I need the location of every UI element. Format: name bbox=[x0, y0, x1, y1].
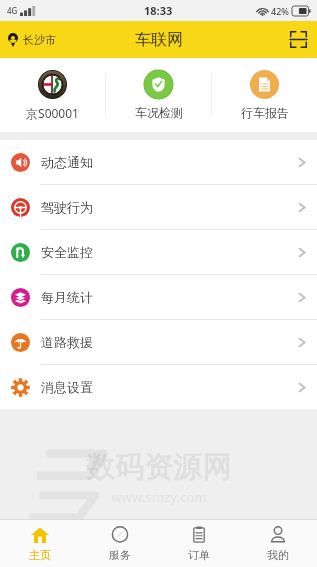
staticText: 订单 bbox=[188, 548, 210, 562]
staticText: 动态通知 bbox=[41, 154, 93, 170]
staticText: 我的 bbox=[267, 548, 289, 562]
button[interactable]: Scan QR code bbox=[280, 24, 317, 55]
button[interactable]: 订单 bbox=[159, 520, 238, 567]
staticText: 京S00001 bbox=[26, 105, 79, 121]
button[interactable]: 行车报告 bbox=[212, 62, 317, 128]
button[interactable]: 道路救援 bbox=[0, 320, 317, 364]
staticText: 每月统计 bbox=[41, 289, 93, 305]
button[interactable]: 主页 bbox=[0, 520, 80, 567]
staticText: 消息设置 bbox=[41, 379, 93, 395]
staticText: www.smzy.com bbox=[111, 488, 207, 506]
staticText: 18:33 bbox=[144, 3, 173, 18]
button[interactable]: 服务 bbox=[80, 520, 159, 567]
staticText: 驾驶行为 bbox=[41, 199, 93, 215]
staticText: 道路救援 bbox=[41, 334, 93, 350]
button[interactable]: 京S00001 bbox=[0, 62, 105, 129]
staticText: 主页 bbox=[29, 548, 51, 562]
staticText: 行车报告 bbox=[241, 105, 289, 120]
staticText: 服务 bbox=[109, 548, 131, 562]
staticText: 4G bbox=[7, 5, 18, 16]
button[interactable]: 消息设置 bbox=[0, 365, 317, 409]
button[interactable]: 车况检测 bbox=[106, 62, 211, 128]
staticText: 安全监控 bbox=[41, 244, 93, 260]
button[interactable]: 长沙市 bbox=[0, 27, 64, 53]
button[interactable]: 安全监控 bbox=[0, 230, 317, 274]
button[interactable]: 驾驶行为 bbox=[0, 185, 317, 229]
button[interactable]: 每月统计 bbox=[0, 275, 317, 319]
staticText: 42% bbox=[271, 5, 289, 17]
button[interactable]: 我的 bbox=[238, 520, 317, 567]
staticText: 车况检测 bbox=[135, 105, 183, 120]
button[interactable]: 动态通知 bbox=[0, 140, 317, 184]
staticText: 数码资源网 bbox=[86, 449, 231, 486]
staticText: 车联网 bbox=[135, 30, 183, 50]
staticText: 长沙市 bbox=[23, 33, 56, 47]
